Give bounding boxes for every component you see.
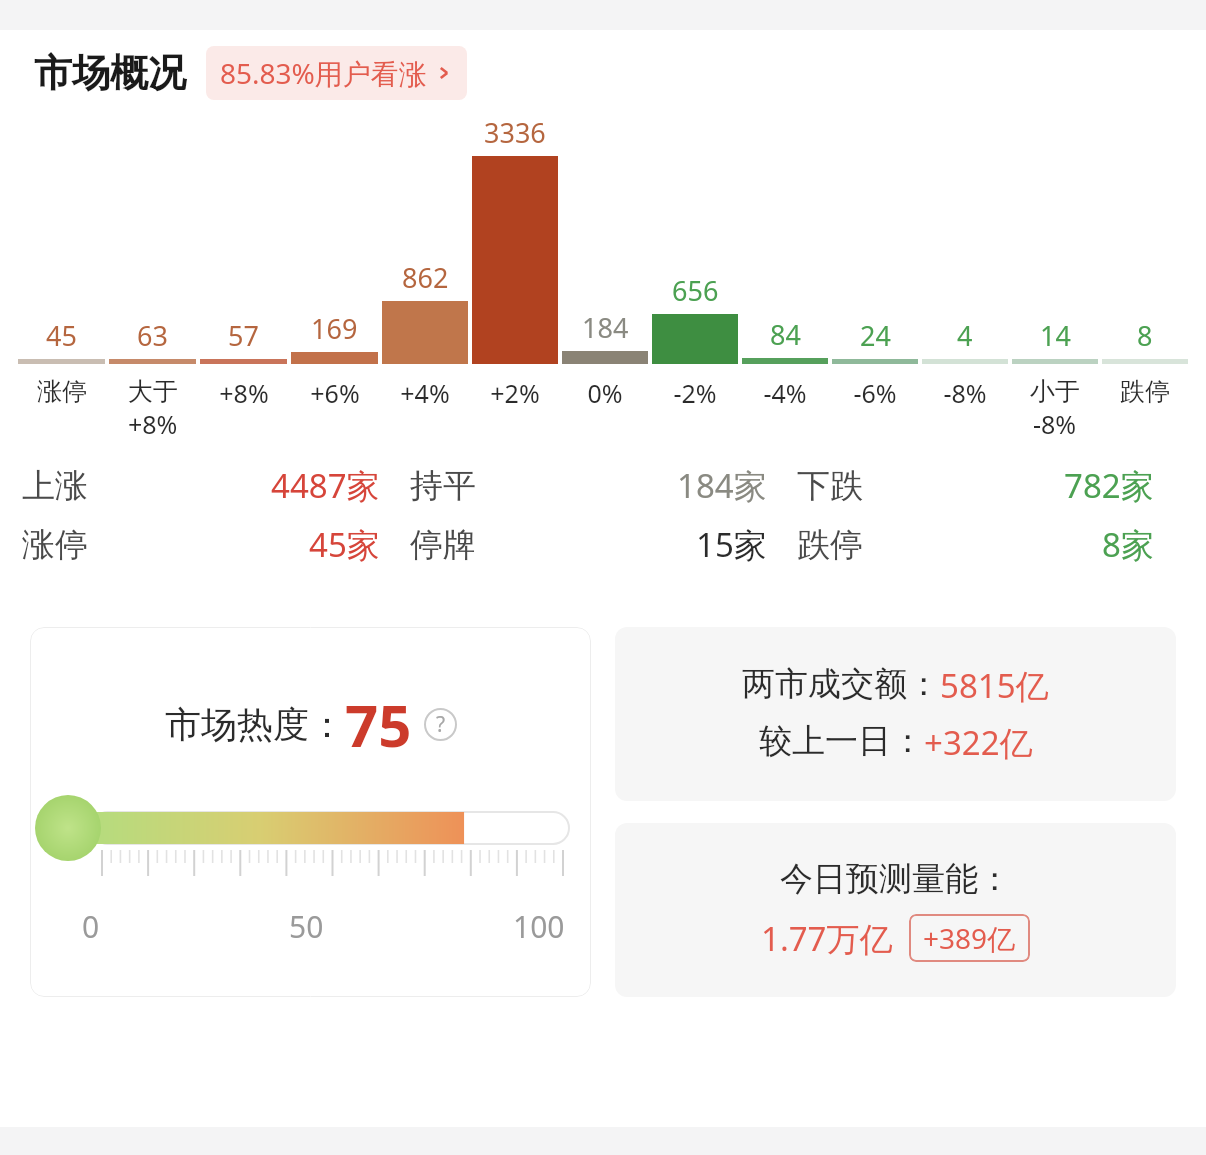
staticText: 14	[1040, 317, 1071, 354]
staticText: 市场热度：	[165, 702, 345, 747]
staticText: -8%	[943, 376, 987, 410]
staticText: 上涨	[22, 465, 88, 507]
button[interactable]: 跌停	[797, 522, 1184, 567]
staticText: -8%	[1033, 407, 1077, 441]
button[interactable]: 85.83%用户看涨	[206, 46, 467, 100]
button[interactable]: 帮助	[424, 708, 457, 741]
button[interactable]: 上涨	[22, 463, 410, 508]
staticText: 862	[402, 259, 449, 296]
staticText: 8家	[1102, 522, 1154, 567]
button[interactable]: 今日预测量能：	[615, 823, 1176, 997]
staticText: 45	[46, 317, 77, 354]
staticText: 169	[311, 310, 358, 347]
button[interactable]: 市场热度：	[30, 627, 591, 997]
staticText: 50	[289, 906, 324, 947]
staticText: 小于	[1030, 376, 1080, 407]
staticText: 5815亿	[940, 663, 1049, 708]
staticText: -4%	[763, 376, 807, 410]
button[interactable]: 下跌	[797, 463, 1184, 508]
staticText: 4	[957, 317, 973, 354]
staticText: 停牌	[410, 524, 476, 566]
staticText: +4%	[400, 376, 450, 410]
staticText: 4487家	[271, 463, 380, 508]
staticText: 较上一日：	[759, 720, 924, 762]
staticText: 63	[137, 317, 168, 354]
button[interactable]: 两市成交额：	[615, 627, 1176, 801]
button[interactable]: 涨停	[22, 522, 410, 567]
staticText: 大于	[128, 376, 178, 407]
staticText: 656	[672, 272, 719, 309]
staticText: +8%	[219, 376, 269, 410]
staticText: 跌停	[1120, 376, 1170, 407]
staticText: +2%	[490, 376, 540, 410]
staticText: 75	[345, 685, 412, 764]
staticText: 100	[513, 906, 565, 947]
staticText: 84	[770, 316, 801, 353]
staticText: -2%	[673, 376, 717, 410]
button[interactable]: 停牌	[410, 522, 797, 567]
staticText: 24	[860, 317, 891, 354]
staticText: 3336	[484, 114, 546, 151]
staticText: -6%	[853, 376, 897, 410]
staticText: 涨停	[22, 524, 88, 566]
staticText: 782家	[1064, 463, 1154, 508]
staticText: 184	[582, 309, 629, 346]
staticText: 今日预测量能：	[780, 858, 1011, 900]
staticText: 45家	[309, 522, 380, 567]
staticText: 0	[82, 906, 100, 947]
staticText: +389亿	[923, 919, 1016, 957]
staticText: 15家	[696, 522, 767, 567]
staticText: 0%	[587, 376, 623, 410]
staticText: 57	[228, 317, 259, 354]
staticText: 两市成交额：	[742, 663, 940, 705]
staticText: +8%	[128, 407, 178, 441]
staticText: 1.77万亿	[761, 916, 893, 961]
staticText: +6%	[310, 376, 360, 410]
staticText: +322亿	[924, 720, 1033, 765]
staticText: 8	[1137, 317, 1153, 354]
button[interactable]: 持平	[410, 463, 797, 508]
staticText: ?	[436, 710, 446, 739]
staticText: 持平	[410, 465, 476, 507]
staticText: 跌停	[797, 524, 863, 566]
staticText: 下跌	[797, 465, 863, 507]
staticText: 85.83%用户看涨	[220, 54, 427, 92]
staticText: 市场概况	[34, 49, 186, 97]
staticText: 184家	[677, 463, 767, 508]
staticText: 涨停	[37, 376, 87, 407]
